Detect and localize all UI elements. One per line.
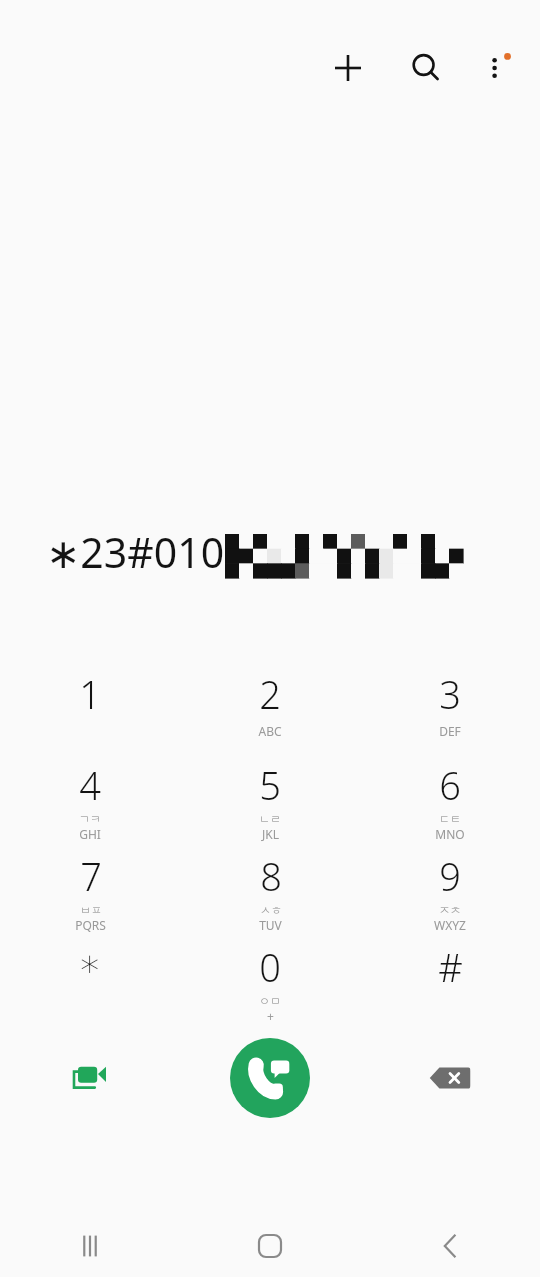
button[interactable]: 5 bbox=[180, 751, 360, 842]
staticText: ㅈㅊ bbox=[439, 903, 461, 917]
staticText: 9 bbox=[439, 850, 461, 902]
staticText: 3 bbox=[439, 668, 461, 720]
button[interactable]: Home bbox=[241, 1217, 299, 1275]
staticText: 1 bbox=[79, 668, 101, 720]
staticText: ABC bbox=[258, 723, 282, 739]
staticText: GHI bbox=[79, 826, 101, 842]
staticText: # bbox=[438, 941, 463, 993]
staticText: ㅇㅁ bbox=[259, 994, 281, 1008]
button[interactable]: Add contact bbox=[320, 40, 376, 96]
button[interactable]: ∗ bbox=[0, 933, 180, 985]
staticText: ㄷㅌ bbox=[439, 812, 461, 826]
staticText: 4 bbox=[79, 759, 101, 811]
button[interactable]: Search bbox=[398, 40, 454, 96]
button[interactable]: Backspace bbox=[413, 1041, 487, 1115]
staticText: ㅂㅍ bbox=[80, 903, 102, 917]
staticText: ㄴㄹ bbox=[259, 812, 281, 826]
button[interactable]: 0 bbox=[180, 933, 360, 1024]
button[interactable]: 2 bbox=[180, 660, 360, 739]
button[interactable]: 1 bbox=[0, 660, 180, 720]
button[interactable]: 3 bbox=[360, 660, 540, 739]
button[interactable]: 6 bbox=[360, 751, 540, 842]
staticText: 0 bbox=[259, 941, 281, 993]
staticText: 6 bbox=[439, 759, 461, 811]
staticText: JKL bbox=[262, 826, 279, 842]
staticText: ㄱㅋ bbox=[79, 812, 101, 826]
button[interactable]: Back bbox=[421, 1217, 479, 1275]
staticText: 5 bbox=[259, 759, 281, 811]
staticText: 2 bbox=[259, 668, 281, 720]
staticText: TUV bbox=[259, 917, 282, 933]
button[interactable]: 4 bbox=[0, 751, 180, 842]
staticText: ∗ bbox=[78, 941, 102, 985]
button[interactable]: # bbox=[360, 933, 540, 993]
staticText: WXYZ bbox=[434, 917, 466, 933]
button[interactable]: More options bbox=[470, 40, 526, 96]
button[interactable]: Video call bbox=[53, 1041, 127, 1115]
staticText: PQRS bbox=[75, 917, 106, 933]
staticText: + bbox=[267, 1008, 274, 1024]
button[interactable]: 7 bbox=[0, 842, 180, 933]
staticText: MNO bbox=[435, 826, 465, 842]
button[interactable]: 9 bbox=[360, 842, 540, 933]
staticText: 8 bbox=[260, 850, 282, 902]
staticText: ∗23#010 bbox=[46, 524, 225, 580]
button[interactable]: Recents bbox=[61, 1217, 119, 1275]
staticText: DEF bbox=[439, 723, 461, 739]
staticText: 7 bbox=[80, 850, 102, 902]
staticText: ㅅㅎ bbox=[260, 903, 282, 917]
button[interactable]: 8 bbox=[180, 842, 360, 933]
button[interactable]: Call bbox=[230, 1038, 310, 1118]
